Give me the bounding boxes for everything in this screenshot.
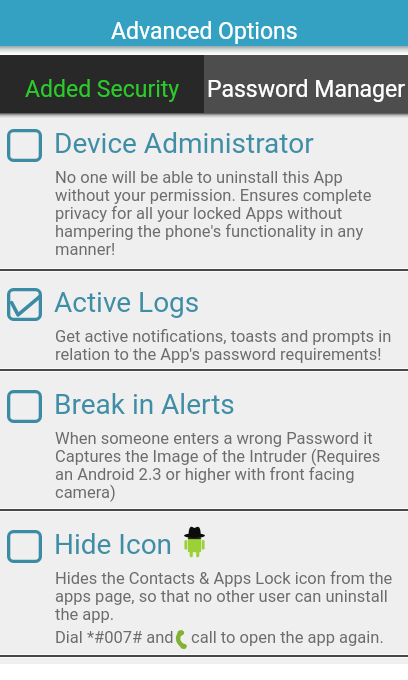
staticText: Device Administrator bbox=[54, 127, 314, 160]
staticText: Get active notifications, toasts and pro… bbox=[55, 327, 392, 365]
staticText: Advanced Options bbox=[111, 18, 298, 45]
staticText: Hides the Contacts & Apps Lock icon from… bbox=[55, 569, 393, 625]
staticText: Break in Alerts bbox=[54, 388, 235, 421]
staticText: When someone enters a wrong Password it … bbox=[55, 429, 381, 503]
staticText: Password Manager bbox=[207, 76, 406, 103]
button[interactable]: Password Manager bbox=[204, 55, 408, 113]
other: Disabled bbox=[7, 129, 42, 162]
button[interactable]: Added Security bbox=[0, 55, 204, 113]
button[interactable]: Disabled bbox=[0, 512, 408, 654]
staticText: Dial *#007# and bbox=[55, 628, 174, 647]
staticText: Hide Icon bbox=[54, 528, 173, 561]
button[interactable]: Disabled bbox=[0, 372, 408, 508]
other: Disabled bbox=[7, 390, 42, 423]
staticText: No one will be able to uninstall this Ap… bbox=[55, 168, 372, 260]
staticText: Added Security bbox=[25, 76, 180, 103]
other: Hidden app icon bbox=[184, 526, 205, 558]
button[interactable]: Disabled bbox=[0, 113, 408, 268]
staticText: Active Logs bbox=[54, 286, 200, 319]
other: Call bbox=[176, 630, 187, 649]
button[interactable]: Enabled bbox=[0, 272, 408, 368]
other: Enabled bbox=[7, 288, 42, 321]
other: Disabled bbox=[7, 530, 42, 563]
staticText: call to open the app again. bbox=[187, 628, 384, 647]
